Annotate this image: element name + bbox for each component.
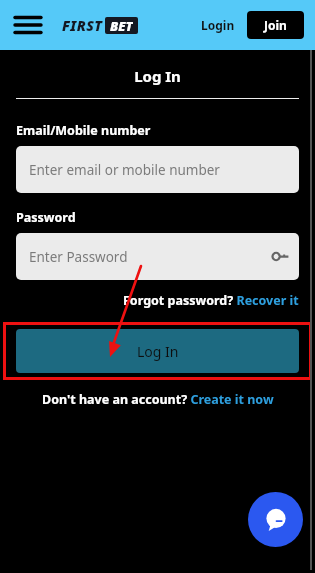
staticText: FIRST (62, 16, 103, 35)
staticText: Email/Mobile number (16, 122, 151, 139)
staticText: Join (264, 17, 287, 33)
staticText: Don't have an account? Create it now (42, 391, 274, 408)
staticText: Password (16, 209, 76, 226)
staticText: Log In (0, 66, 315, 86)
button[interactable]: Menu (10, 7, 46, 43)
staticText: Forgot password? Recover it (123, 292, 299, 309)
button[interactable]: Login (197, 13, 239, 37)
staticText: BET (110, 17, 133, 34)
button[interactable]: Enter email or mobile number (16, 146, 299, 193)
button[interactable]: Enter Password (16, 233, 299, 280)
button[interactable]: Open chat (248, 492, 303, 547)
button[interactable]: Don't have an account? Create it now (42, 391, 274, 408)
other: Show password (272, 249, 287, 264)
staticText: Enter Password (29, 248, 128, 266)
staticText: Log In (137, 342, 179, 361)
button[interactable]: Forgot password? Recover it (123, 292, 299, 309)
button[interactable]: Join (247, 11, 304, 39)
button[interactable]: Log In (16, 329, 299, 373)
staticText: Login (201, 17, 235, 33)
staticText: Enter email or mobile number (29, 161, 220, 179)
